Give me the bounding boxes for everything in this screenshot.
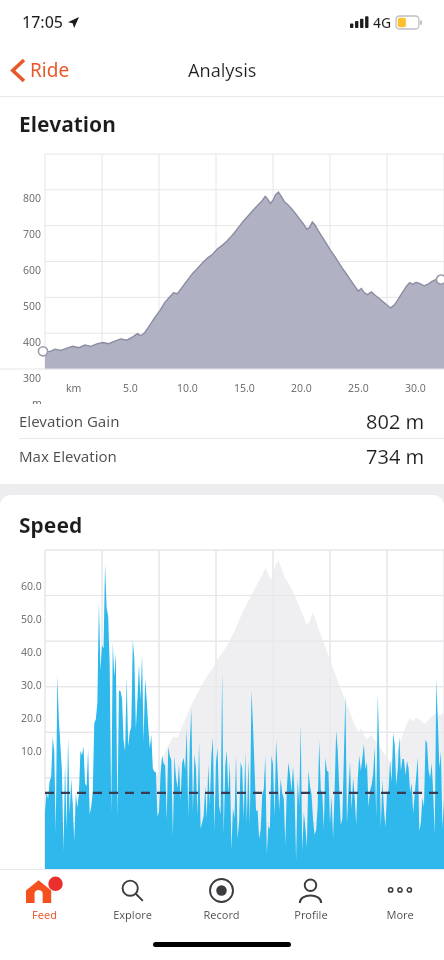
button[interactable]: More [355, 870, 444, 928]
staticText: 30.0 [21, 678, 42, 692]
staticText: Feed [32, 907, 57, 922]
staticText: 20.0 [21, 711, 42, 725]
button[interactable]: Feed [0, 870, 88, 928]
button[interactable]: Record [177, 870, 266, 928]
staticText: 10.0 [21, 744, 42, 758]
staticText: 800 [23, 191, 42, 205]
staticText: Speed [19, 511, 83, 540]
button[interactable]: Profile [266, 870, 355, 928]
staticText: 30.0 [405, 381, 426, 395]
staticText: Record [203, 907, 240, 922]
staticText: 50.0 [21, 612, 42, 626]
staticText: Max Elevation [19, 446, 117, 466]
staticText: 734 m [366, 443, 425, 470]
staticText: 4G [373, 13, 392, 32]
staticText: 802 m [366, 408, 425, 435]
staticText: Explore [113, 907, 152, 922]
staticText: More [386, 907, 414, 922]
staticText: m [32, 396, 42, 404]
staticText: Analysis [188, 58, 257, 83]
staticText: 60.0 [21, 579, 42, 593]
staticText: 15.0 [234, 381, 255, 395]
staticText: Elevation [19, 110, 116, 139]
button[interactable]: Ride [0, 51, 82, 89]
staticText: 300 [23, 371, 42, 385]
button[interactable]: Max Elevation [0, 439, 444, 473]
button[interactable]: Elevation Gain [0, 404, 444, 438]
staticText: 40.0 [21, 645, 42, 659]
staticText: 25.0 [348, 381, 369, 395]
staticText: 500 [23, 299, 42, 313]
staticText: 600 [23, 263, 42, 277]
staticText: 5.0 [123, 381, 138, 395]
staticText: Ride [30, 57, 70, 83]
staticText: 10.0 [177, 381, 198, 395]
staticText: Profile [294, 907, 328, 922]
staticText: km [66, 381, 82, 395]
button[interactable]: Explore [88, 870, 177, 928]
staticText: Elevation Gain [19, 411, 120, 431]
staticText: 17:05 [22, 11, 63, 33]
staticText: 400 [23, 335, 42, 349]
staticText: 700 [23, 227, 42, 241]
staticText: 20.0 [291, 381, 312, 395]
